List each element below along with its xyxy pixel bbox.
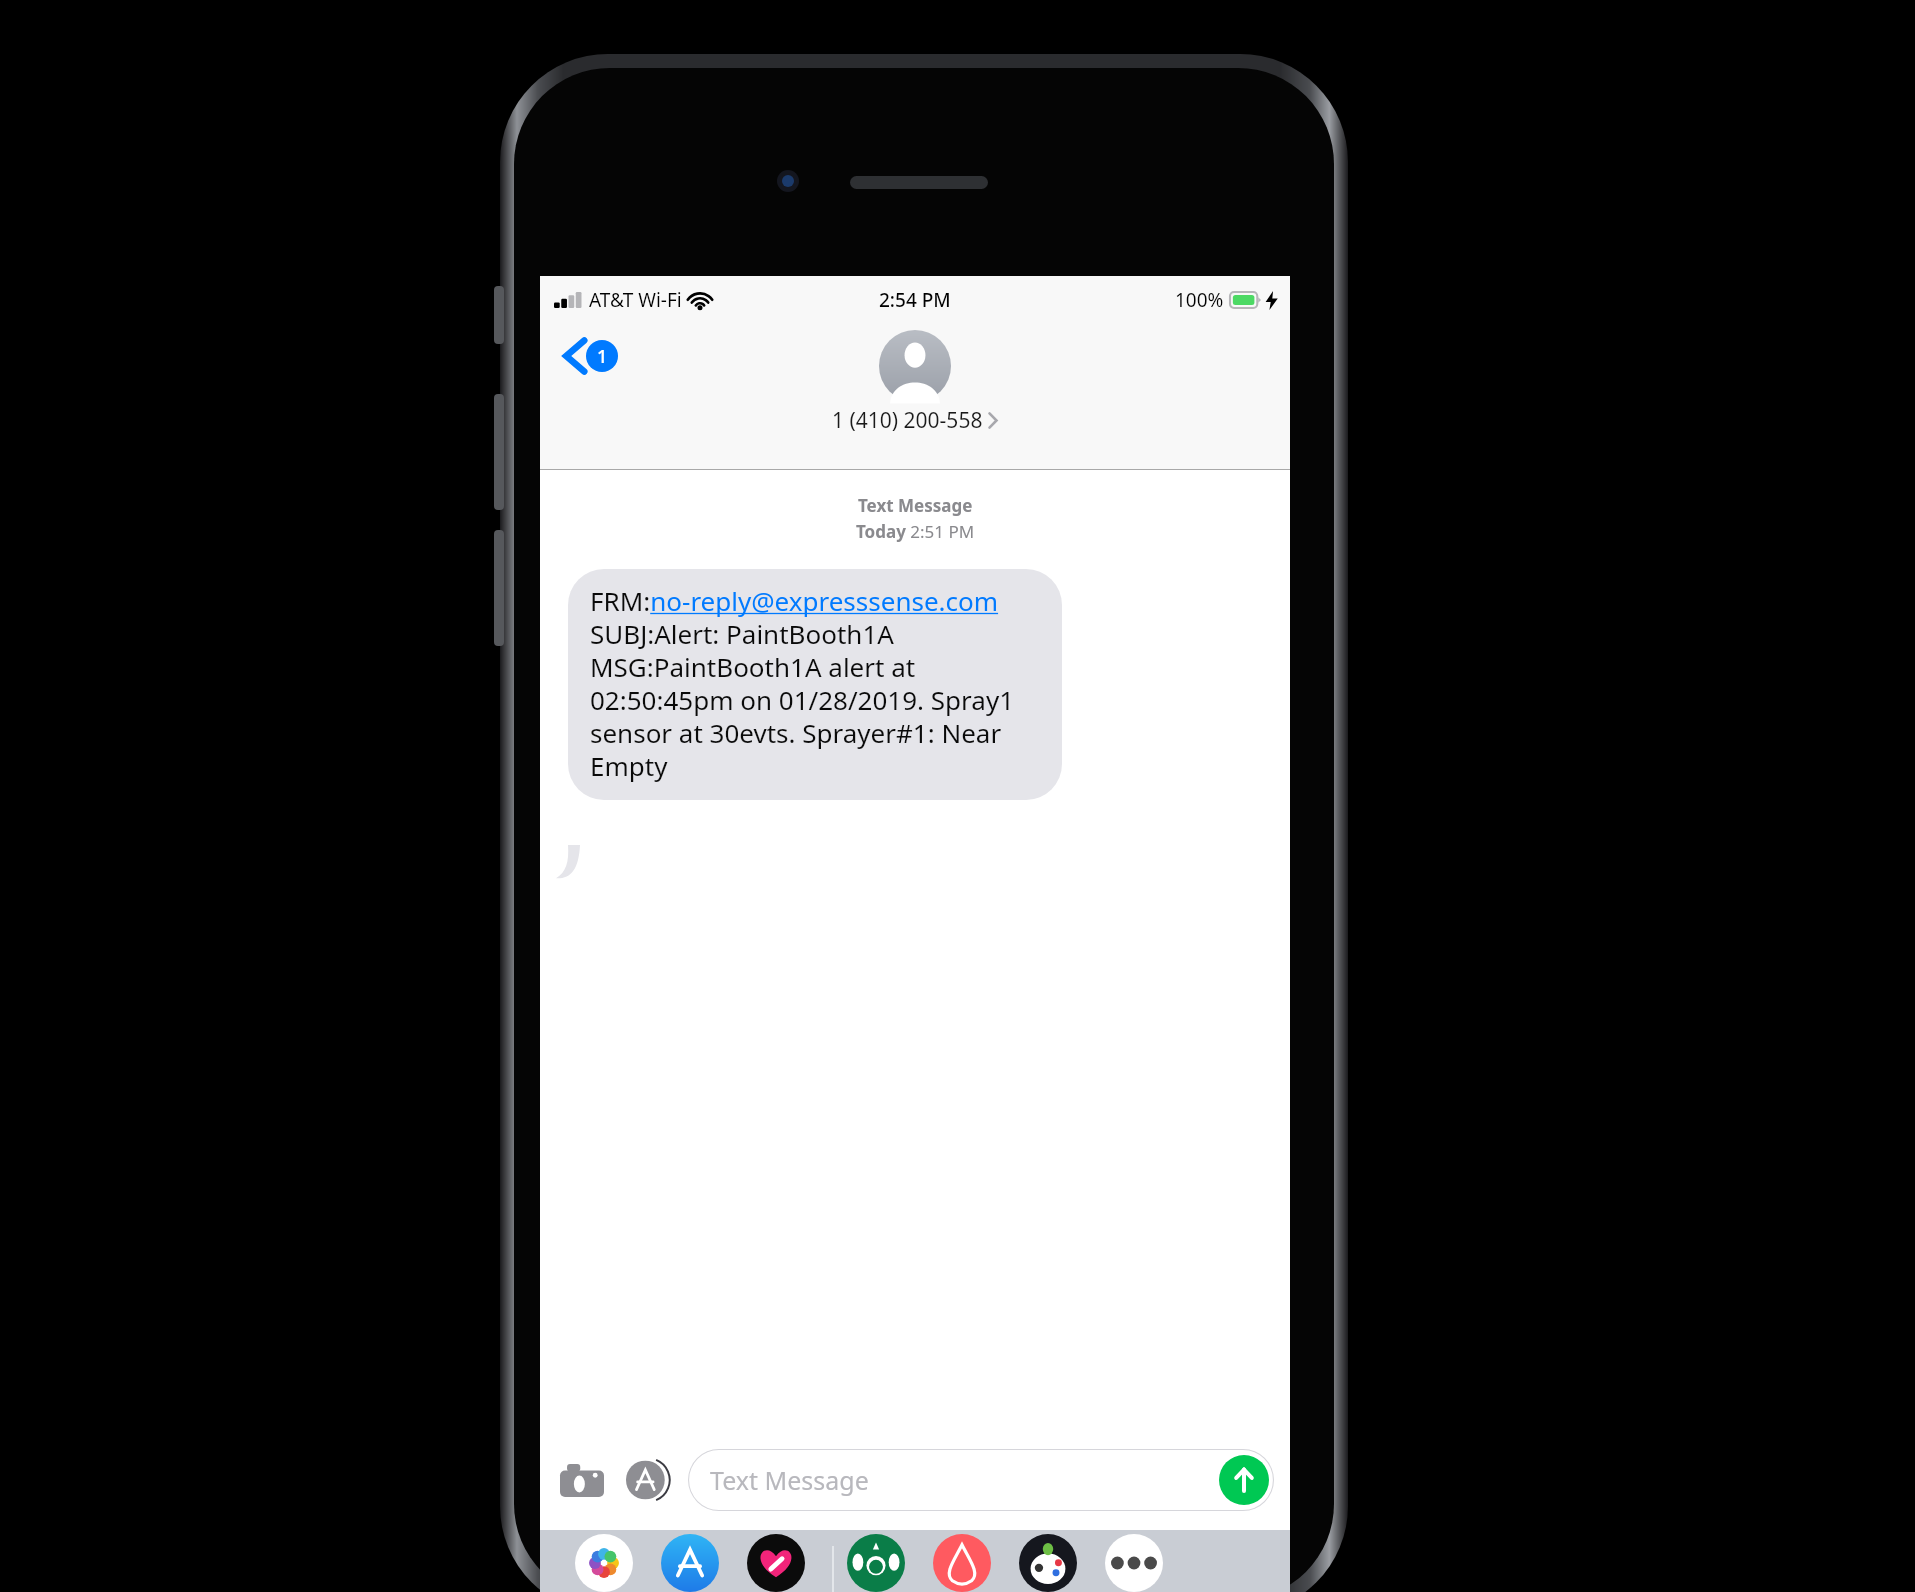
- button[interactable]: Text Message: [688, 1449, 1274, 1511]
- staticText: 100%: [1175, 287, 1224, 313]
- button[interactable]: App: [840, 1534, 912, 1592]
- button[interactable]: Back, 1 unread: [560, 334, 622, 378]
- staticText: Text Message: [710, 1463, 869, 1497]
- staticText: Text Message: [858, 494, 973, 517]
- staticText: FRM:no-reply@expresssense.com SUBJ:Alert…: [590, 583, 1044, 784]
- button[interactable]: Camera: [556, 1454, 608, 1506]
- button[interactable]: App: [654, 1534, 726, 1592]
- button[interactable]: App: [568, 1534, 640, 1592]
- button[interactable]: App Store: [622, 1454, 674, 1506]
- button[interactable]: Send: [1219, 1455, 1269, 1505]
- button[interactable]: FRM:no-reply@expresssense.com SUBJ:Alert…: [568, 569, 1062, 800]
- staticText: 1 (410) 200-558: [832, 406, 983, 435]
- staticText: AT&T Wi-Fi: [589, 287, 682, 313]
- staticText: Today 2:51 PM: [856, 520, 975, 543]
- button[interactable]: App: [1098, 1534, 1170, 1592]
- staticText: 1: [597, 344, 608, 369]
- button[interactable]: App: [926, 1534, 998, 1592]
- staticText: 2:54 PM: [879, 287, 951, 313]
- button[interactable]: 1 (410) 200-558: [832, 330, 998, 435]
- button[interactable]: App: [1012, 1534, 1084, 1592]
- button[interactable]: App: [740, 1534, 812, 1592]
